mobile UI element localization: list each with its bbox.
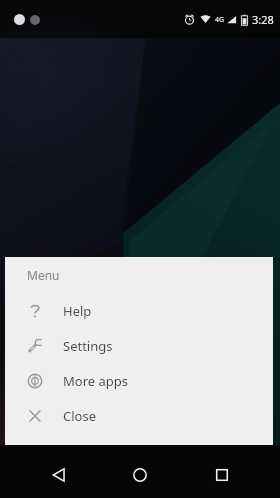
button[interactable]: More apps <box>5 363 273 398</box>
button[interactable]: Close <box>5 398 273 433</box>
button[interactable]: Help <box>5 293 273 328</box>
staticText: 4G <box>215 15 225 25</box>
button[interactable]: Settings <box>5 328 273 363</box>
button[interactable]: Back <box>36 452 82 498</box>
staticText: Settings <box>63 337 113 355</box>
staticText: Help <box>63 302 92 320</box>
staticText: 3:28 <box>252 12 274 27</box>
staticText: Menu <box>27 267 60 283</box>
staticText: More apps <box>63 372 128 390</box>
button[interactable]: Home <box>117 452 163 498</box>
staticText: Close <box>63 407 96 425</box>
button[interactable]: Recent apps <box>199 452 245 498</box>
